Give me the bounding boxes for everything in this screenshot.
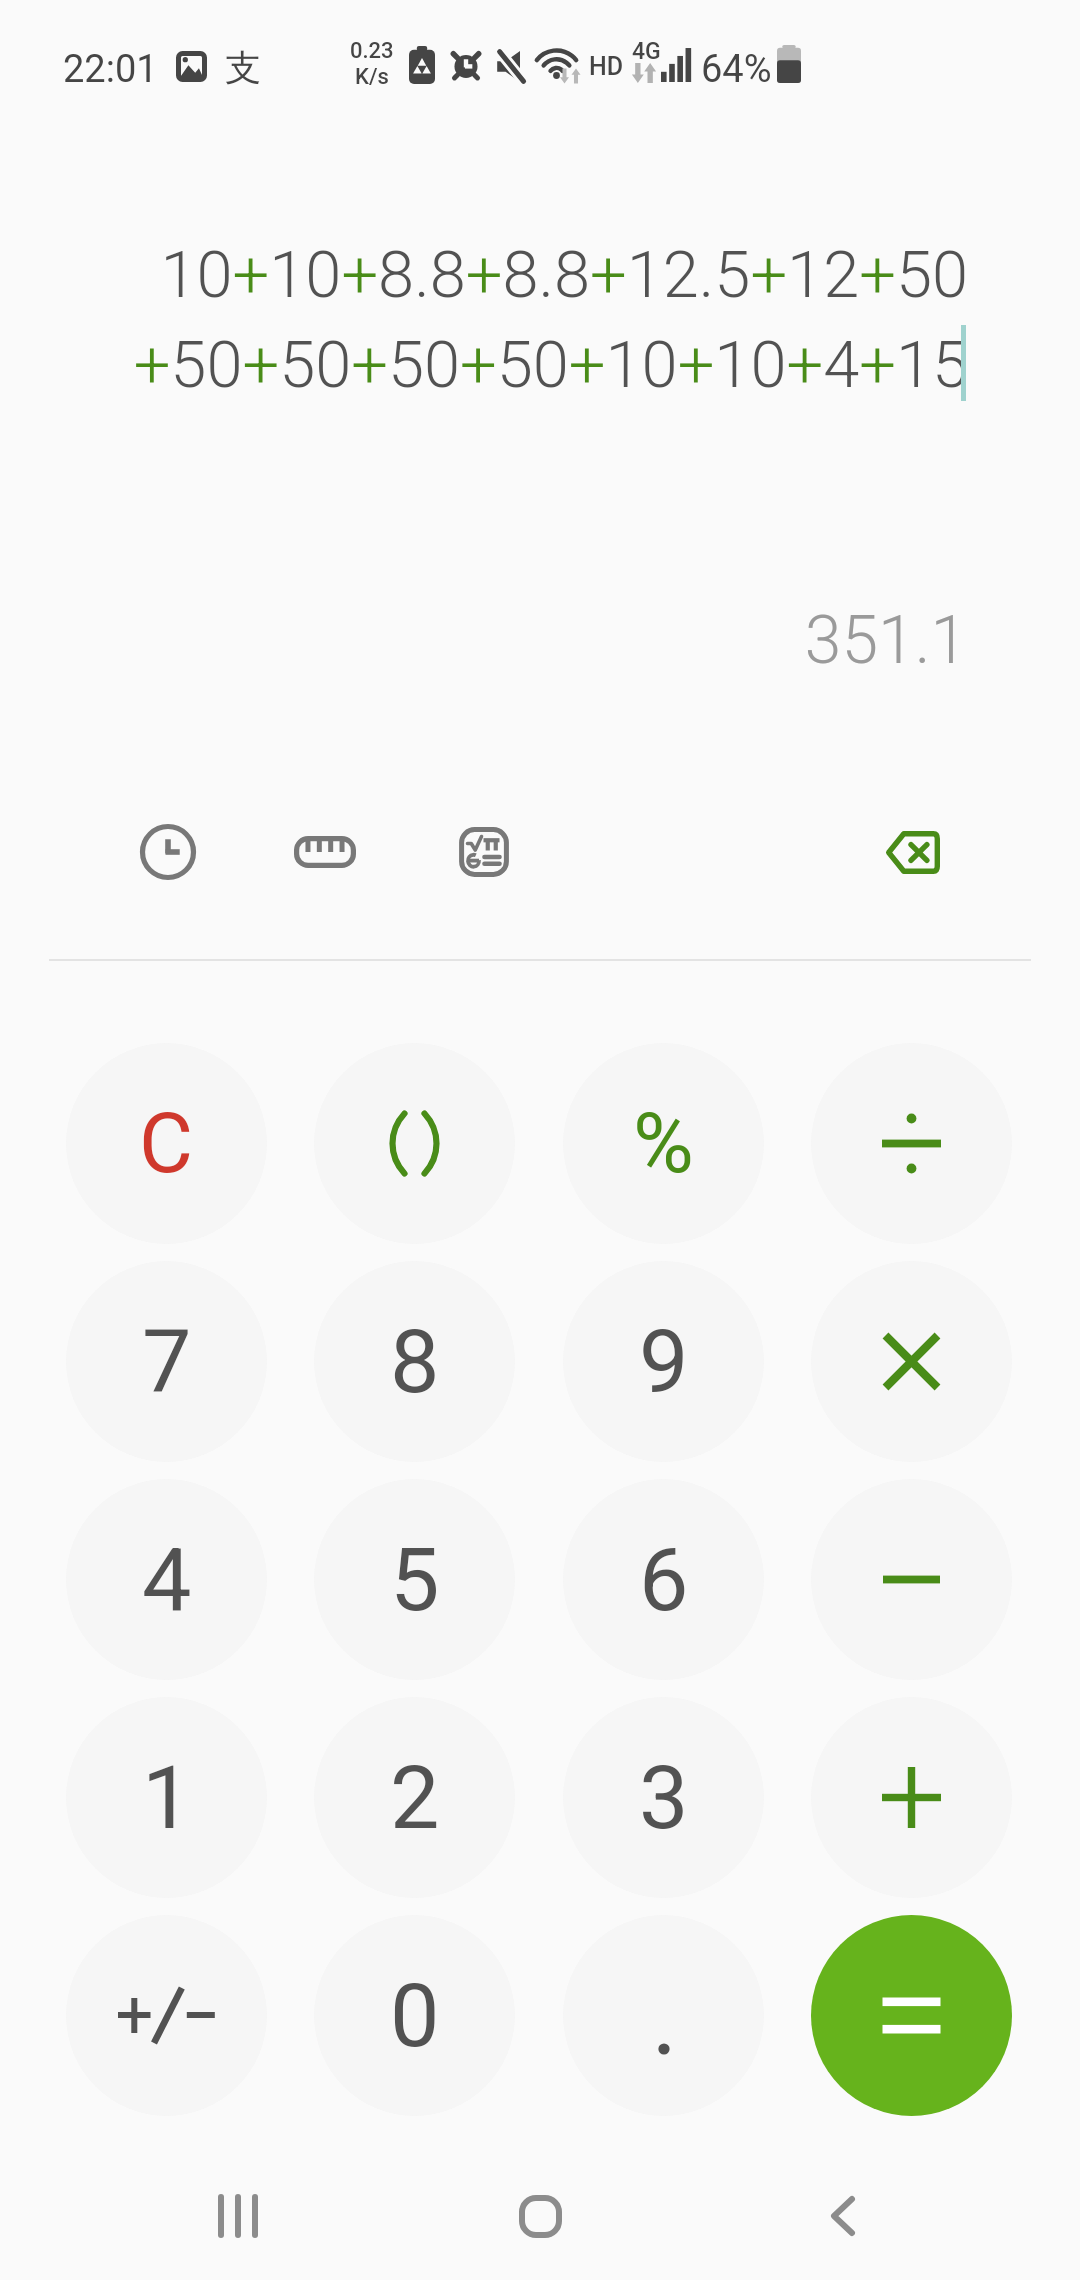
- staticText: 1: [142, 1746, 192, 1849]
- staticText: HD: [589, 52, 624, 81]
- button[interactable]: Recent apps: [178, 2156, 298, 2276]
- staticText: 10+10+8.8+8.8+12.5+12+50 +50+50+50+50+10…: [40, 237, 968, 403]
- staticText: 5: [390, 1528, 440, 1631]
- button[interactable]: Decimal point: [563, 1915, 764, 2116]
- button[interactable]: Add: [811, 1697, 1012, 1898]
- button[interactable]: Parentheses: [314, 1043, 515, 1244]
- staticText: %: [633, 1095, 694, 1192]
- button[interactable]: 2: [314, 1697, 515, 1898]
- button[interactable]: Calculation history: [110, 794, 226, 910]
- staticText: 4: [142, 1528, 192, 1631]
- staticText: 351.1: [0, 602, 967, 679]
- staticText: 8: [390, 1310, 440, 1413]
- button[interactable]: 3: [563, 1697, 764, 1898]
- button[interactable]: Subtract: [811, 1479, 1012, 1680]
- staticText: 0: [390, 1964, 440, 2067]
- button[interactable]: Scientific calculator: [426, 794, 542, 910]
- button[interactable]: Back: [783, 2156, 903, 2276]
- button[interactable]: %: [563, 1043, 764, 1244]
- staticText: 6: [639, 1528, 689, 1631]
- staticText: 0.23: [350, 38, 394, 64]
- button[interactable]: 5: [314, 1479, 515, 1680]
- button[interactable]: Backspace: [855, 794, 971, 910]
- button[interactable]: Equals: [811, 1915, 1012, 2116]
- button[interactable]: Unit converter: [267, 794, 383, 910]
- button[interactable]: 1: [66, 1697, 267, 1898]
- button[interactable]: 4: [66, 1479, 267, 1680]
- button[interactable]: 7: [66, 1261, 267, 1462]
- button[interactable]: Divide: [811, 1043, 1012, 1244]
- button[interactable]: Plus minus sign: [66, 1915, 267, 2116]
- button[interactable]: 8: [314, 1261, 515, 1462]
- staticText: 22:01: [63, 47, 158, 92]
- staticText: K/s: [355, 64, 389, 90]
- staticText: 3: [639, 1746, 689, 1849]
- staticText: 7: [142, 1310, 192, 1413]
- staticText: 64%: [701, 47, 772, 92]
- staticText: 9: [639, 1310, 689, 1413]
- button[interactable]: C: [66, 1043, 267, 1244]
- staticText: 4G: [632, 38, 661, 65]
- button[interactable]: Home: [480, 2156, 600, 2276]
- staticText: 2: [390, 1746, 440, 1849]
- button[interactable]: 9: [563, 1261, 764, 1462]
- staticText: C: [139, 1095, 194, 1192]
- staticText: 支: [225, 45, 261, 90]
- button[interactable]: 0: [314, 1915, 515, 2116]
- button[interactable]: Multiply: [811, 1261, 1012, 1462]
- button[interactable]: 6: [563, 1479, 764, 1680]
